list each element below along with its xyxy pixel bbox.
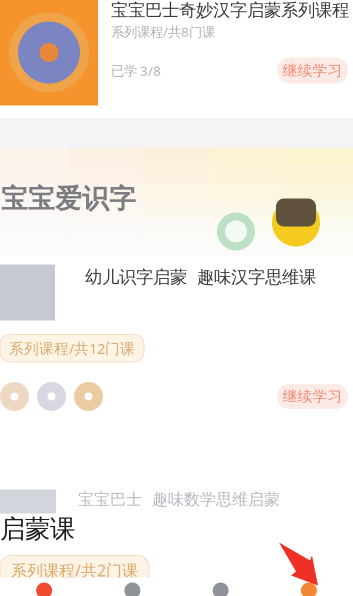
- staticText: 宝宝巴士奇妙汉字启蒙系列课程: [111, 0, 349, 21]
- staticText: 宝宝巴士 趣味数学思维启蒙: [78, 489, 280, 509]
- staticText: 系列课程/共2门课: [11, 560, 138, 581]
- staticText: 宝宝爱识字: [1, 182, 136, 215]
- button[interactable]: 首页: [0, 579, 88, 596]
- button[interactable]: 幼儿识字启蒙 趣味汉字思维课: [0, 255, 353, 478]
- staticText: 幼儿识字启蒙 趣味汉字思维课: [85, 266, 316, 288]
- staticText: 继续学习: [282, 61, 342, 79]
- staticText: 继续学习: [282, 387, 342, 405]
- staticText: 系列课程/共8门课: [111, 23, 215, 40]
- button[interactable]: 宝宝巴士奇妙汉字启蒙系列课程: [0, 0, 353, 118]
- button[interactable]: 发现: [176, 579, 265, 596]
- button[interactable]: 我的: [265, 579, 353, 596]
- button[interactable]: 宝宝巴士 趣味数学思维启蒙: [0, 478, 353, 578]
- staticText: 启蒙课: [0, 513, 75, 545]
- staticText: 系列课程/共12门课: [9, 338, 135, 358]
- button[interactable]: 宝宝爱识字: [0, 147, 353, 255]
- button[interactable]: 课程: [88, 579, 176, 596]
- staticText: 已学 3/8: [111, 62, 161, 79]
